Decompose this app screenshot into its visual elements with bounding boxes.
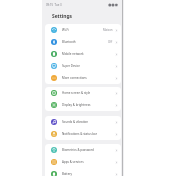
button[interactable]: More connections: [45, 72, 121, 84]
staticText: Apps & services: [62, 160, 84, 164]
button[interactable]: Notifications & status bar: [45, 128, 121, 140]
staticText: 09:15 Tue 3: [46, 3, 62, 7]
staticText: Wi-Fi: [62, 28, 69, 32]
staticText: Battery: [62, 172, 73, 176]
button[interactable]: Wi-Fi: [45, 24, 121, 36]
button[interactable]: Battery: [45, 168, 121, 176]
button[interactable]: Display & brightness: [45, 99, 121, 111]
staticText: Off: [108, 40, 113, 44]
button[interactable]: Biometrics & password: [45, 144, 121, 156]
staticText: Mobile network: [62, 52, 84, 56]
button[interactable]: Sounds & vibration: [45, 116, 121, 128]
other: Status icons: [108, 3, 118, 7]
staticText: Display & brightness: [62, 103, 91, 107]
staticText: Biometrics & password: [62, 148, 94, 152]
staticText: More connections: [62, 76, 87, 80]
staticText: Notifications & status bar: [62, 132, 97, 136]
button[interactable]: Home screen & style: [45, 87, 121, 99]
staticText: Bluetooth: [62, 40, 76, 44]
staticText: Super Device: [62, 64, 80, 68]
staticText: Maison: [103, 28, 113, 32]
staticText: Settings: [52, 13, 73, 20]
button[interactable]: Super Device: [45, 60, 121, 72]
button[interactable]: Apps & services: [45, 156, 121, 168]
button[interactable]: Bluetooth: [45, 36, 121, 48]
staticText: Sounds & vibration: [62, 120, 89, 124]
staticText: Home screen & style: [62, 91, 91, 95]
button[interactable]: Mobile network: [45, 48, 121, 60]
